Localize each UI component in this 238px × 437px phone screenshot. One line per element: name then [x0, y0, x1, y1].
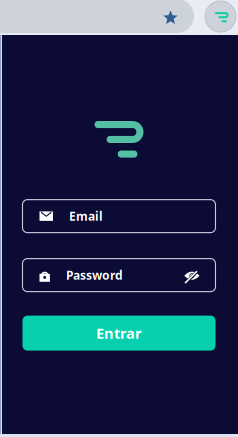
button[interactable]: Bookmark	[0, 0, 194, 34]
button[interactable]: Password	[22, 259, 215, 292]
staticText: Email	[69, 208, 103, 224]
button[interactable]: Email	[22, 200, 215, 233]
button[interactable]: Account	[205, 1, 236, 32]
button[interactable]: Entrar	[22, 316, 215, 351]
staticText: Password	[66, 267, 123, 283]
staticText: Entrar	[96, 323, 142, 343]
